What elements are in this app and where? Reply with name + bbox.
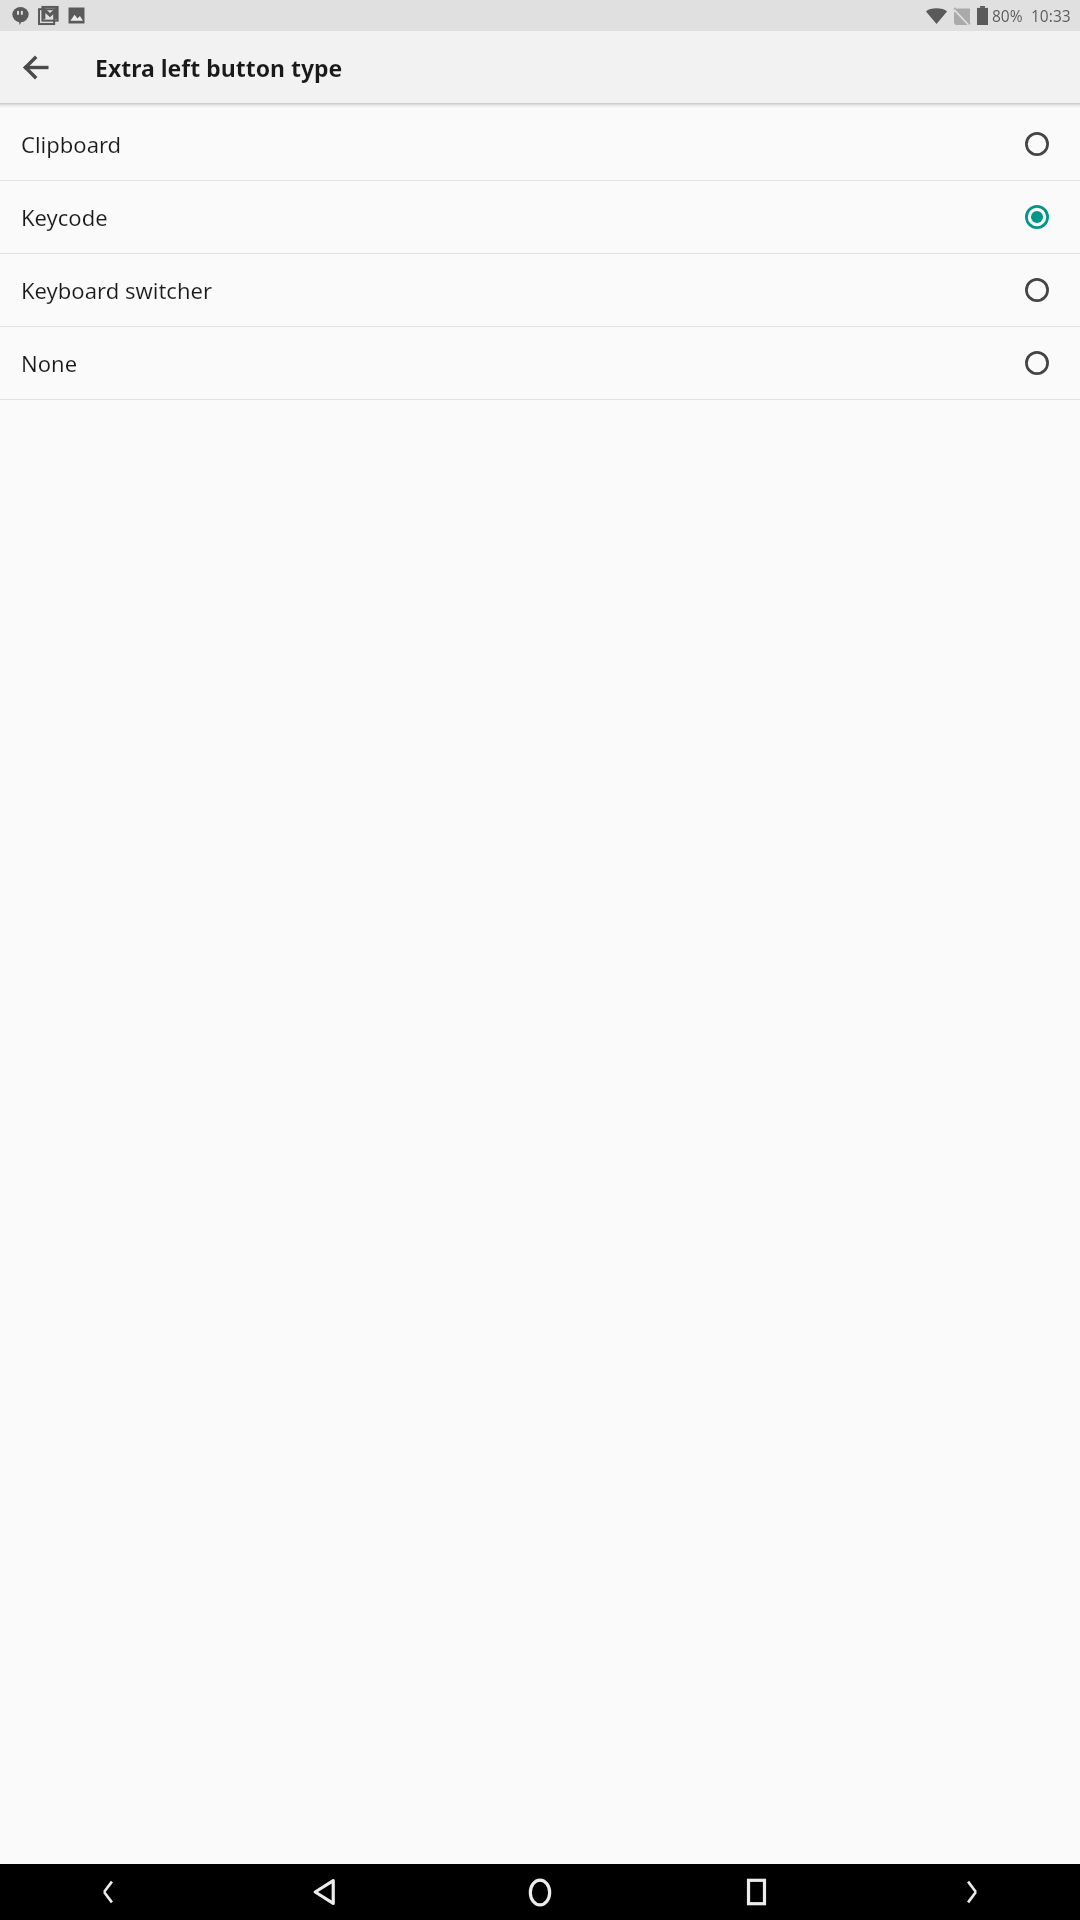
staticText: Clipboard	[21, 129, 1024, 159]
button[interactable]: Keyboard switcher	[0, 254, 1080, 326]
button[interactable]: Previous	[0, 1864, 216, 1920]
staticText: Keycode	[21, 202, 1024, 232]
button[interactable]: None	[0, 327, 1080, 399]
staticText: Extra left button type	[95, 52, 343, 83]
button[interactable]: Back	[12, 43, 60, 91]
button[interactable]: Recents	[648, 1864, 864, 1920]
staticText: None	[21, 348, 1024, 378]
staticText: Keyboard switcher	[21, 275, 1024, 305]
staticText: 80%	[992, 5, 1023, 26]
button[interactable]: Keycode	[0, 181, 1080, 253]
button[interactable]: Home	[432, 1864, 648, 1920]
button[interactable]: Clipboard	[0, 108, 1080, 180]
button[interactable]: Back	[216, 1864, 432, 1920]
staticText: 10:33	[1031, 5, 1071, 26]
button[interactable]: Next	[864, 1864, 1080, 1920]
